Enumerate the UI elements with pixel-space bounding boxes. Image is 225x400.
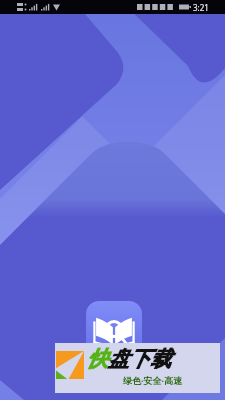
staticText: 绿色·安全·高速 <box>123 374 183 386</box>
button[interactable]: App icon <box>86 301 142 357</box>
staticText: 快 <box>87 346 108 372</box>
staticText: 3:21 <box>193 2 209 13</box>
staticText: 盘下载 <box>108 346 171 372</box>
